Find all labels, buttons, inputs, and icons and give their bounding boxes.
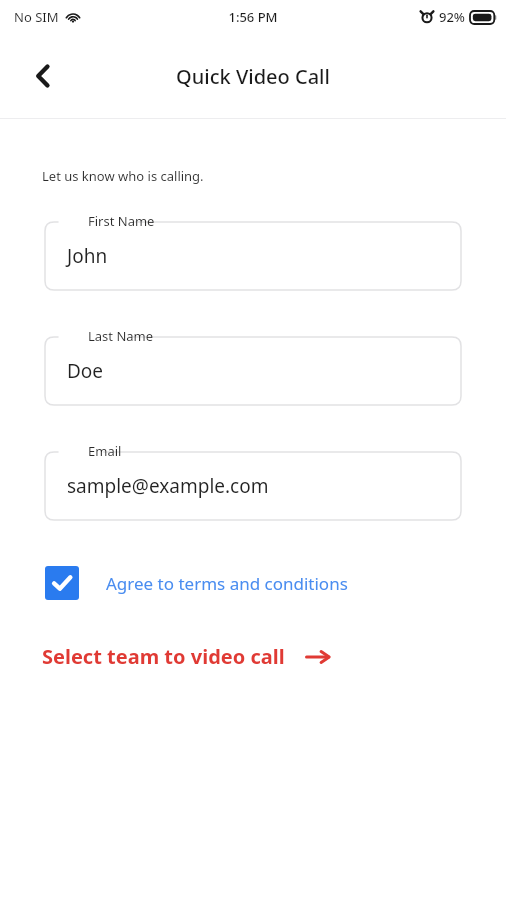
button[interactable]: Back [20,53,66,99]
button[interactable]: Doe [45,325,461,405]
button[interactable]: sample@example.com [45,440,461,520]
staticText: sample@example.com [67,473,269,499]
staticText: 92% [439,8,465,26]
staticText: First Name [88,212,155,230]
staticText: 1:56 PM [228,8,278,26]
staticText: Agree to terms and conditions [106,572,348,595]
staticText: Doe [67,358,104,384]
staticText: Let us know who is calling. [42,167,204,185]
staticText: John [67,243,108,269]
staticText: Email [88,442,122,460]
button[interactable]: Agree to terms and conditions [45,566,348,600]
button[interactable]: John [45,210,461,290]
staticText: Last Name [88,327,154,345]
staticText: Select team to video call [42,643,285,670]
staticText: Quick Video Call [176,63,330,90]
button[interactable]: Select team to video call [42,643,331,670]
staticText: No SIM [14,8,59,26]
